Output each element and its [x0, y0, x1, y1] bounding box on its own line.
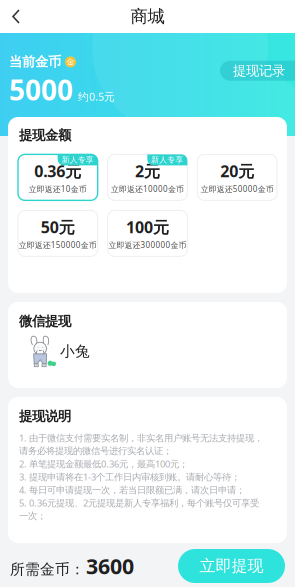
staticText: 小兔 [60, 342, 90, 360]
staticText: 一次； [19, 510, 46, 522]
staticText: 约0.5元 [78, 89, 115, 104]
staticText: 立即提现 [199, 556, 263, 576]
staticText: 立即返还150000金币 [19, 240, 97, 250]
staticText: 请务必将提现的微信号进行实名认证； [19, 445, 172, 457]
staticText: 新人专享 [62, 155, 94, 165]
staticText: 3600 [86, 552, 134, 580]
staticText: 所需金币： [10, 560, 85, 578]
staticText: 2. 单笔提现金额最低0.36元，最高100元； [19, 458, 188, 470]
button[interactable]: Back [0, 0, 34, 33]
button[interactable]: 100元 [108, 210, 187, 256]
staticText: 立即返还10金币 [29, 184, 87, 194]
staticText: 5000 [9, 71, 73, 108]
staticText: 提现金额 [19, 127, 71, 143]
staticText: 2元 [135, 160, 160, 182]
staticText: 5. 0.36元提现、2元提现是新人专享福利，每个账号仅可享受 [19, 497, 259, 509]
staticText: 商城 [130, 6, 164, 27]
button[interactable]: 50元 [18, 210, 98, 256]
staticText: 立即返还300000金币 [108, 240, 186, 250]
staticText: 100元 [126, 216, 169, 238]
button[interactable]: 2元 [108, 154, 187, 200]
button[interactable]: 20元 [197, 154, 277, 200]
staticText: 提现说明 [19, 408, 71, 424]
staticText: 立即返还50000金币 [201, 184, 274, 194]
staticText: 1. 由于微信支付需要实名制，非实名用户账号无法支持提现， [19, 432, 263, 444]
staticText: 20元 [220, 160, 254, 182]
staticText: 立即返还10000金币 [111, 184, 184, 194]
staticText: 当前金币 [9, 54, 61, 70]
staticText: 微信提现 [19, 313, 71, 329]
staticText: 50元 [41, 216, 75, 238]
staticText: 3. 提现申请将在1-3个工作日内审核到账。请耐心等待； [19, 471, 240, 483]
staticText: 0.36元 [34, 160, 81, 182]
button[interactable]: 立即提现 [178, 549, 285, 583]
button[interactable]: 提现记录 [220, 61, 295, 81]
staticText: 新人专享 [151, 155, 183, 165]
staticText: 金 [66, 57, 74, 67]
staticText: 4. 每日可申请提现一次，若当日限额已满，请次日申请； [19, 484, 245, 496]
button[interactable]: 0.36元 [18, 154, 98, 200]
staticText: 提现记录 [233, 62, 285, 79]
